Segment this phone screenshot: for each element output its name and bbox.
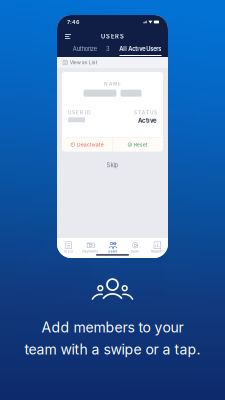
button[interactable]: To Do: [57, 238, 79, 253]
staticText: Add members to your: [41, 319, 183, 336]
staticText: 7:46: [67, 19, 79, 25]
staticText: S T A T U S: [134, 110, 157, 115]
button[interactable]: Reset: [112, 138, 163, 152]
staticText: All Active Users: [119, 45, 161, 52]
staticText: Reset: [134, 141, 148, 148]
staticText: team with a swipe or a tap.: [24, 341, 200, 358]
button[interactable]: All Active Users: [112, 44, 168, 57]
staticText: Payments: [82, 249, 98, 253]
staticText: N A M E: [104, 81, 121, 87]
staticText: Reports: [151, 249, 163, 253]
staticText: 3: [106, 45, 110, 52]
staticText: To Do: [63, 249, 73, 253]
staticText: View as List: [70, 59, 98, 65]
staticText: U S E R I D: [68, 110, 90, 115]
button[interactable]: Users: [101, 238, 124, 253]
staticText: Users: [107, 249, 117, 253]
staticText: Tools: [130, 249, 139, 253]
button[interactable]: Menu: [61, 29, 75, 44]
button[interactable]: Authorize: [57, 44, 112, 57]
button[interactable]: Tools: [124, 238, 146, 253]
button[interactable]: Reports: [146, 238, 168, 253]
button[interactable]: Payments: [79, 238, 101, 253]
button[interactable]: Deactivate: [62, 138, 112, 152]
staticText: Deactivate: [77, 141, 104, 148]
staticText: Active: [138, 117, 157, 124]
staticText: Authorize: [73, 45, 97, 52]
staticText: Skip: [106, 162, 118, 169]
staticText: U S E R S: [101, 33, 124, 40]
